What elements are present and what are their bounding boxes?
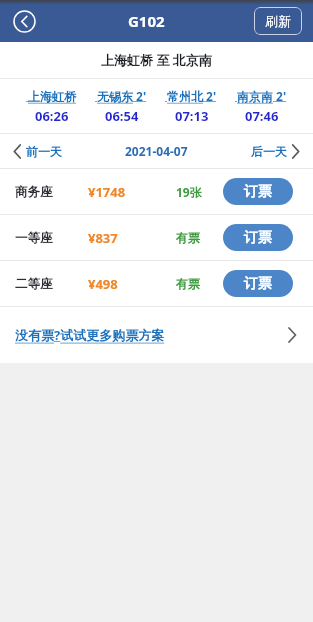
- button[interactable]: 二等座: [0, 261, 313, 306]
- staticText: 南京南 2': [235, 88, 289, 104]
- button[interactable]: 没有票?试试更多购票方案: [0, 307, 313, 363]
- staticText: 二等座: [15, 276, 53, 292]
- button[interactable]: [13, 10, 36, 33]
- staticText: 订票: [244, 229, 272, 247]
- staticText: 常州北 2': [165, 88, 219, 104]
- button[interactable]: 刷新: [254, 7, 302, 35]
- staticText: ¥498: [88, 275, 118, 293]
- button[interactable]: 商务座: [0, 169, 313, 214]
- staticText: G102: [128, 11, 165, 31]
- staticText: 订票: [244, 183, 272, 201]
- staticText: 订票: [244, 275, 272, 293]
- staticText: 上海虹桥 至 北京南: [101, 51, 212, 69]
- button[interactable]: 常州北 2': [157, 88, 227, 125]
- staticText: 有票: [176, 230, 200, 245]
- staticText: 后一天: [251, 144, 287, 159]
- staticText: 无锡东 2': [95, 88, 149, 104]
- button[interactable]: 订票: [223, 224, 293, 251]
- staticText: 一等座: [15, 230, 53, 246]
- staticText: 19张: [176, 184, 202, 200]
- staticText: 刷新: [265, 13, 291, 29]
- button[interactable]: 南京南 2': [227, 88, 297, 125]
- staticText: 07:13: [175, 107, 209, 125]
- staticText: 2021-04-07: [125, 143, 188, 159]
- staticText: ¥1748: [88, 183, 126, 201]
- staticText: 上海虹桥: [26, 88, 78, 104]
- staticText: ¥837: [88, 229, 118, 247]
- button[interactable]: 订票: [223, 270, 293, 297]
- button[interactable]: 后一天: [251, 144, 300, 159]
- button[interactable]: 一等座: [0, 215, 313, 260]
- staticText: 07:46: [245, 107, 279, 125]
- staticText: 没有票?试试更多购票方案: [15, 326, 165, 344]
- staticText: 有票: [176, 276, 200, 291]
- staticText: 商务座: [15, 184, 53, 200]
- button[interactable]: 无锡东 2': [87, 88, 157, 125]
- button[interactable]: 前一天: [13, 144, 62, 159]
- staticText: 前一天: [26, 144, 62, 159]
- button[interactable]: 订票: [223, 178, 293, 205]
- staticText: 06:54: [105, 107, 139, 125]
- staticText: 06:26: [35, 107, 69, 125]
- button[interactable]: 上海虹桥: [17, 88, 87, 125]
